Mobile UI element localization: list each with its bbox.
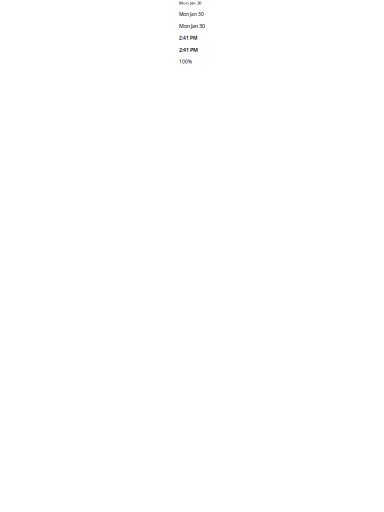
staticText: Mon Jan 30 xyxy=(179,0,201,6)
staticText: Mon Jan 30 xyxy=(179,22,205,30)
staticText: 2:41 PM xyxy=(179,35,197,41)
staticText: 100% xyxy=(179,58,192,65)
staticText: Mon Jan 30 xyxy=(179,11,204,17)
staticText: 2:41 PM xyxy=(179,46,198,53)
